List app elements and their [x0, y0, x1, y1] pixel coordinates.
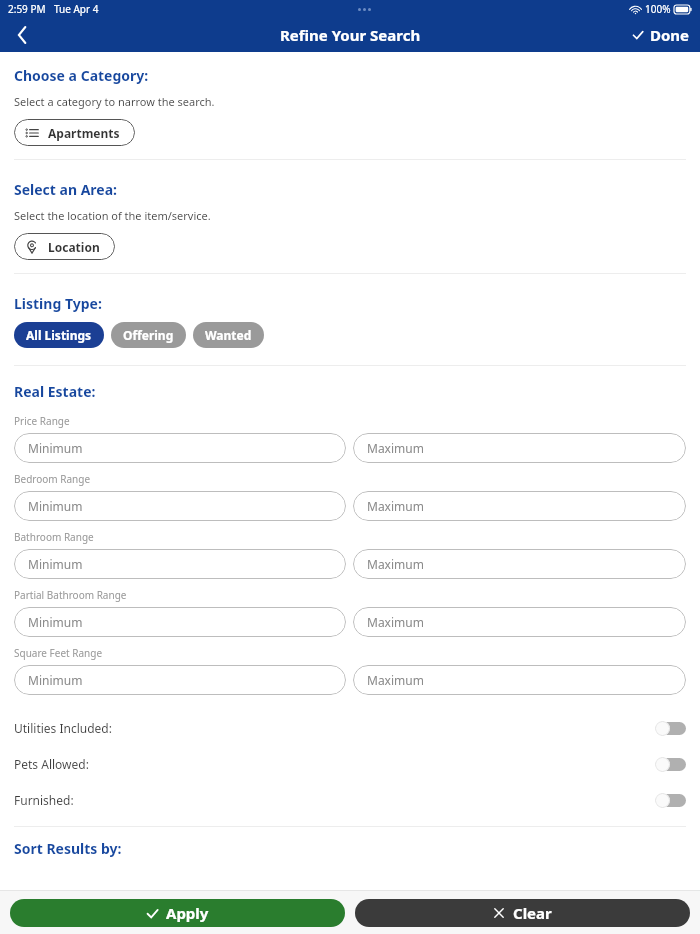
staticText: Sort Results by: [14, 839, 122, 858]
staticText: All Listings [26, 327, 92, 343]
button[interactable]: Minimum [14, 665, 346, 695]
button[interactable]: Minimum [14, 549, 346, 579]
button[interactable]: Maximum [353, 549, 686, 579]
staticText: Maximum [367, 498, 424, 514]
button[interactable]: Offering [111, 322, 186, 348]
button[interactable]: All Listings [14, 322, 104, 348]
staticText: Minimum [28, 556, 83, 572]
button[interactable]: Utilities Included: [654, 720, 686, 736]
staticText: 100% [645, 2, 671, 16]
staticText: Listing Type: [14, 294, 102, 313]
staticText: Done [650, 25, 690, 45]
button[interactable]: Furnished: [654, 792, 686, 808]
staticText: Clear [513, 903, 552, 923]
staticText: Square Feet Range [14, 646, 103, 660]
staticText: Partial Bathroom Range [14, 588, 127, 602]
staticText: Wanted [205, 327, 252, 343]
staticText: Minimum [28, 440, 83, 456]
button[interactable]: Clear [355, 899, 690, 927]
button[interactable]: Back [0, 18, 44, 52]
staticText: Select an Area: [14, 180, 118, 199]
staticText: Choose a Category: [14, 66, 149, 85]
staticText: Pets Allowed: [14, 756, 89, 772]
staticText: Location [48, 239, 100, 255]
button[interactable]: Wanted [193, 322, 264, 348]
staticText: 2:59 PM [8, 2, 46, 16]
staticText: Minimum [28, 614, 83, 630]
staticText: Real Estate: [14, 382, 96, 401]
staticText: Price Range [14, 414, 70, 428]
staticText: Refine Your Search [280, 25, 421, 45]
button[interactable]: Maximum [353, 433, 686, 463]
button[interactable]: Minimum [14, 491, 346, 521]
staticText: Select a category to narrow the search. [14, 94, 215, 109]
staticText: Maximum [367, 614, 424, 630]
staticText: Bathroom Range [14, 530, 94, 544]
button[interactable]: Pets Allowed: [654, 756, 686, 772]
staticText: Apartments [48, 125, 120, 141]
button[interactable]: Minimum [14, 433, 346, 463]
staticText: Bedroom Range [14, 472, 91, 486]
staticText: Maximum [367, 672, 424, 688]
staticText: Apply [166, 903, 209, 923]
button[interactable]: Maximum [353, 665, 686, 695]
staticText: Offering [123, 327, 174, 343]
button[interactable]: Location [14, 233, 115, 260]
staticText: Minimum [28, 498, 83, 514]
button[interactable]: Done [622, 18, 700, 52]
staticText: Maximum [367, 440, 424, 456]
button[interactable]: Maximum [353, 491, 686, 521]
button[interactable]: Apply [10, 899, 345, 927]
staticText: Utilities Included: [14, 720, 112, 736]
staticText: Tue Apr 4 [54, 2, 99, 16]
staticText: Select the location of the item/service. [14, 208, 211, 223]
button[interactable]: Maximum [353, 607, 686, 637]
staticText: Minimum [28, 672, 83, 688]
staticText: Maximum [367, 556, 424, 572]
button[interactable]: Apartments [14, 119, 135, 146]
button[interactable]: Minimum [14, 607, 346, 637]
staticText: Furnished: [14, 792, 74, 808]
